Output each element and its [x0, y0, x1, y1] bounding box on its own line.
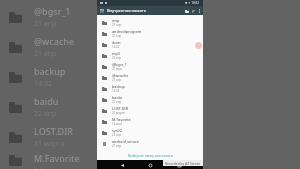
button[interactable]: Back — [118, 161, 126, 169]
button[interactable]: M.Favorite — [97, 116, 203, 127]
button[interactable]: backup — [97, 83, 203, 94]
staticText: @wcache — [34, 35, 75, 47]
button[interactable]: @bgsr_1 — [0, 2, 300, 32]
staticText: 21 апр — [112, 144, 122, 148]
staticText: 22 апр — [34, 109, 57, 119]
button[interactable]: baidu — [0, 92, 300, 122]
button[interactable]: android_secure — [97, 138, 203, 149]
button[interactable]: Recents — [175, 161, 183, 169]
staticText: 21 апр — [112, 23, 122, 27]
staticText: 22 апр — [112, 133, 122, 137]
staticText: sys02 — [112, 128, 122, 133]
staticText: @bgsr_1 — [34, 5, 71, 17]
staticText: 31 марта — [112, 111, 125, 115]
button[interactable]: Navigation drawer — [99, 8, 105, 14]
button[interactable]: baidu — [97, 94, 203, 105]
button[interactable]: Sort — [190, 8, 196, 14]
button[interactable]: New folder — [184, 8, 190, 14]
staticText: LOST.DIR — [34, 125, 74, 137]
button[interactable]: androidprogram — [97, 28, 203, 39]
staticText: 22 апр — [112, 56, 122, 60]
staticText: @wcache — [112, 73, 129, 78]
staticText: dcim — [112, 40, 121, 45]
staticText: mtp — [112, 18, 120, 23]
staticText: 14:32 — [34, 79, 52, 89]
staticText: mp3 — [112, 51, 120, 56]
staticText: 14:32 — [112, 45, 120, 49]
staticText: backup — [34, 65, 66, 77]
staticText: baidu — [112, 95, 122, 100]
staticText: @bgsr_1 — [112, 62, 127, 67]
button[interactable]: LOST.DIR — [0, 122, 300, 152]
button[interactable]: mtp — [97, 17, 203, 28]
button[interactable]: @wcache — [97, 72, 203, 83]
staticText: Внутренняя память — [107, 8, 146, 13]
staticText: 22 апр — [112, 100, 122, 104]
staticText: 21 апр — [112, 78, 122, 82]
button[interactable]: Home — [146, 161, 154, 169]
staticText: android_secure — [112, 139, 139, 144]
button[interactable]: mp3 — [97, 50, 203, 61]
button[interactable]: @wcache — [0, 32, 300, 62]
button[interactable]: LOST.DIR — [97, 105, 203, 116]
button[interactable]: backup — [0, 62, 300, 92]
button[interactable]: Touch indicator — [195, 42, 202, 49]
button[interactable]: More options — [196, 8, 202, 14]
staticText: M.Favorite — [34, 152, 80, 164]
staticText: backup — [112, 84, 125, 89]
staticText: androidprogram — [112, 29, 142, 34]
staticText: LOST.DIR — [112, 106, 128, 111]
staticText: 14:32 — [112, 89, 120, 93]
staticText: 31 марта — [34, 139, 65, 149]
button[interactable]: M.Favorite — [0, 152, 300, 169]
staticText: M.Favorite — [112, 117, 131, 122]
staticText: 31 мая — [112, 67, 122, 71]
staticText: 21 апр — [34, 19, 57, 29]
button[interactable]: @bgsr_1 — [97, 61, 203, 72]
button[interactable]: sys02 — [97, 127, 203, 138]
staticText: baidu — [34, 95, 59, 107]
button[interactable]: dcim — [97, 39, 203, 50]
staticText: ▼ ↑ 14:32 — [185, 1, 200, 5]
staticText: 21 апр — [112, 34, 122, 38]
staticText: 21 апр — [34, 49, 57, 59]
staticText: Recorded by AZ Screen — [165, 161, 201, 165]
staticText: 14 мая — [112, 122, 122, 126]
button[interactable]: Выберите папку для записи — [128, 153, 173, 157]
staticText: Выберите папку для записи — [128, 153, 173, 157]
